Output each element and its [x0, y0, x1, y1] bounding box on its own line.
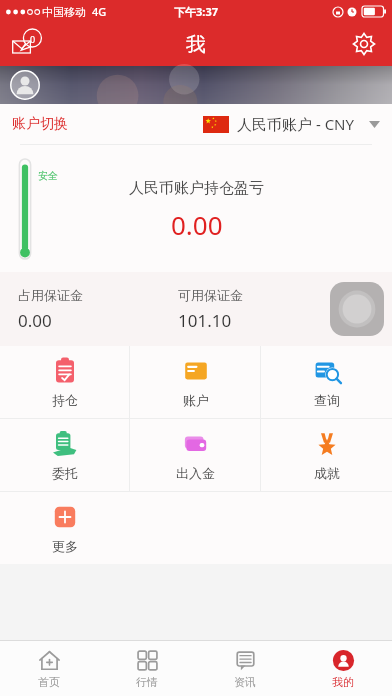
button[interactable]: 账户: [130, 346, 261, 418]
staticText: 0: [30, 33, 36, 45]
button[interactable]: Profile avatar: [10, 70, 40, 100]
button[interactable]: Settings: [346, 26, 382, 62]
staticText: 占用保证金: [18, 287, 83, 303]
staticText: 0.00: [171, 207, 223, 242]
button[interactable]: 资讯: [196, 641, 294, 696]
button[interactable]: 更多: [0, 492, 130, 564]
button[interactable]: 账户切换: [0, 104, 392, 144]
button[interactable]: Messages: [8, 24, 48, 64]
staticText: 安全: [38, 169, 58, 182]
button[interactable]: 委托: [0, 419, 130, 491]
staticText: 账户切换: [12, 115, 68, 133]
staticText: 下午3:37: [174, 4, 218, 19]
button[interactable]: 出入金: [130, 419, 261, 491]
button[interactable]: 首页: [0, 641, 98, 696]
button[interactable]: 行情: [98, 641, 196, 696]
staticText: 可用保证金: [178, 287, 243, 303]
staticText: 我的: [332, 675, 354, 689]
button[interactable]: 持仓: [0, 346, 130, 418]
button[interactable]: Refresh: [330, 282, 384, 336]
staticText: 账户: [183, 392, 209, 408]
button[interactable]: 我的: [294, 641, 392, 696]
staticText: 资讯: [234, 675, 256, 689]
staticText: 行情: [136, 675, 158, 689]
staticText: 委托: [52, 465, 78, 481]
staticText: 人民币账户 - CNY: [237, 114, 355, 134]
staticText: 出入金: [176, 465, 215, 481]
staticText: 101.10: [178, 309, 232, 332]
button[interactable]: 查询: [261, 346, 392, 418]
staticText: 查询: [314, 392, 340, 408]
staticText: 4G: [92, 4, 107, 19]
staticText: 持仓: [52, 392, 78, 408]
staticText: 0.00: [18, 309, 52, 332]
staticText: 人民币账户持仓盈亏: [129, 179, 264, 198]
staticText: 中国移动: [42, 5, 86, 19]
staticText: 我: [186, 32, 206, 57]
staticText: 更多: [52, 538, 78, 554]
staticText: 成就: [314, 465, 340, 481]
button[interactable]: 成就: [261, 419, 392, 491]
staticText: 首页: [38, 675, 60, 689]
